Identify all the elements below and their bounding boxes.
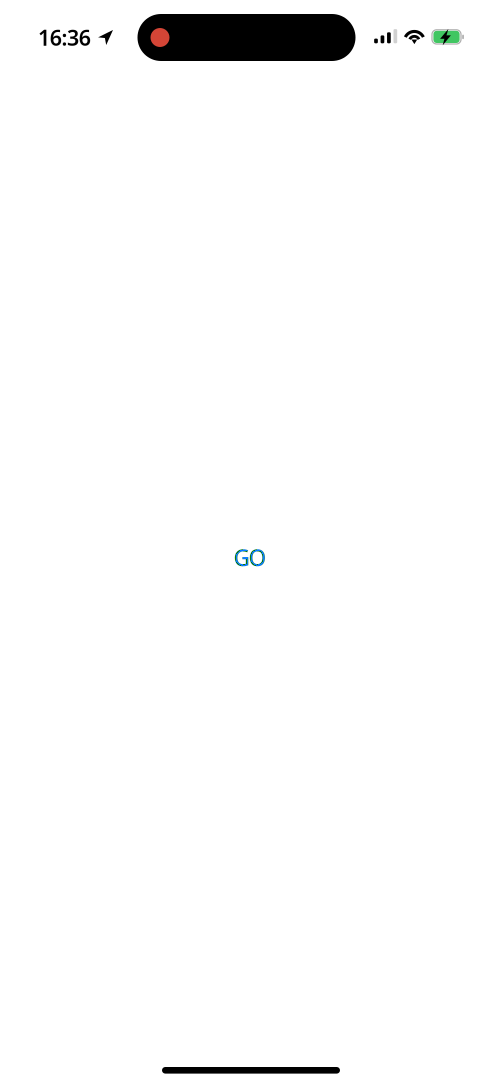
button[interactable]: GO [233,542,267,572]
staticText: GO [233,542,267,572]
